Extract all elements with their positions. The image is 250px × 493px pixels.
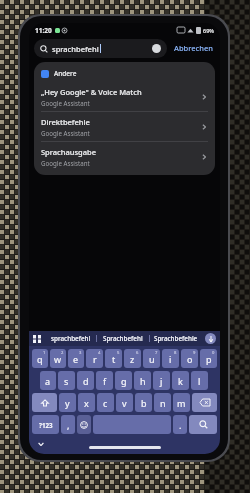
button[interactable]: Backspace — [192, 393, 217, 412]
staticText: q — [37, 353, 43, 365]
button[interactable]: Shift — [32, 393, 57, 412]
button[interactable]: s — [58, 371, 75, 390]
button[interactable]: Sprachausgabe — [34, 142, 215, 171]
staticText: 2 — [61, 350, 64, 356]
button[interactable]: Sprachbefehl — [97, 331, 149, 346]
button[interactable]: sprachbefehl — [45, 331, 96, 346]
button[interactable]: 7 — [143, 349, 160, 368]
button[interactable]: Direktbefehle — [34, 112, 215, 142]
button[interactable]: Emoji — [77, 415, 91, 434]
button[interactable]: g — [115, 371, 132, 390]
staticText: y — [65, 397, 70, 409]
staticText: b — [141, 397, 147, 409]
staticText: Google Assistant — [41, 99, 90, 107]
staticText: h — [140, 375, 146, 387]
staticText: 1 — [43, 350, 46, 356]
staticText: c — [103, 397, 108, 409]
staticText: a — [45, 375, 51, 387]
button[interactable]: y — [59, 393, 76, 412]
button[interactable]: 0 — [200, 349, 217, 368]
staticText: sprachbefehl — [51, 334, 91, 343]
staticText: , — [67, 419, 70, 431]
button[interactable]: Search — [189, 415, 217, 434]
button[interactable]: 3 — [68, 349, 84, 368]
staticText: Google Assistant — [41, 159, 90, 167]
staticText: j — [160, 375, 163, 387]
button[interactable]: 5 — [105, 349, 122, 368]
staticText: l — [198, 375, 201, 387]
button[interactable]: 1 — [32, 349, 48, 368]
staticText: 4 — [98, 350, 101, 356]
staticText: 5 — [117, 350, 120, 356]
staticText: f — [103, 375, 107, 387]
button[interactable]: h — [134, 371, 151, 390]
button[interactable]: f — [96, 371, 113, 390]
staticText: ?123 — [39, 421, 53, 429]
button[interactable]: 6 — [124, 349, 141, 368]
button[interactable]: v — [116, 393, 133, 412]
button[interactable]: Clear — [152, 44, 161, 53]
staticText: 69% — [203, 27, 214, 34]
staticText: Sprachbefehl — [103, 334, 143, 343]
staticText: 3 — [79, 350, 82, 356]
staticText: z — [130, 353, 135, 365]
staticText: 6 — [136, 350, 139, 356]
staticText: t — [112, 353, 116, 365]
button[interactable]: b — [135, 393, 152, 412]
staticText: 9 — [193, 350, 196, 356]
staticText: 0 — [212, 350, 215, 356]
staticText: 11:20 — [35, 26, 52, 35]
button[interactable]: 2 — [50, 349, 66, 368]
staticText: i — [169, 353, 172, 365]
button[interactable]: Search — [34, 39, 167, 58]
staticText: u — [149, 353, 155, 365]
button[interactable]: ?123 — [32, 415, 59, 434]
staticText: g — [121, 375, 127, 387]
staticText: Google Assistant — [41, 129, 90, 137]
staticText: m — [177, 397, 186, 409]
button[interactable]: „Hey Google" & Voice Match — [34, 82, 215, 112]
staticText: Andere — [54, 69, 77, 78]
staticText: p — [206, 353, 212, 365]
staticText: x — [84, 397, 89, 409]
button[interactable]: c — [97, 393, 114, 412]
button[interactable]: 9 — [181, 349, 198, 368]
button[interactable]: Sprachbefehle — [150, 331, 202, 346]
button[interactable]: Clipboard — [33, 335, 41, 343]
button[interactable]: j — [153, 371, 170, 390]
button[interactable]: x — [78, 393, 95, 412]
button[interactable]: a — [40, 371, 56, 390]
staticText: Sprachbefehle — [154, 334, 198, 343]
staticText: v — [122, 397, 127, 409]
staticText: Sprachausgabe — [41, 147, 97, 157]
staticText: d — [83, 375, 89, 387]
staticText: sprachbefehl — [52, 44, 99, 54]
button[interactable]: , — [61, 415, 75, 434]
staticText: . — [179, 419, 182, 431]
button[interactable]: k — [172, 371, 189, 390]
button[interactable]: 4 — [86, 349, 103, 368]
staticText: Abbrechen — [174, 43, 213, 53]
staticText: 7 — [155, 350, 158, 356]
button[interactable]: Abbrechen — [172, 40, 215, 56]
staticText: Direktbefehle — [41, 117, 90, 127]
staticText: w — [54, 353, 62, 365]
staticText: „Hey Google" & Voice Match — [41, 87, 142, 97]
button[interactable]: Space — [93, 415, 171, 434]
other: Search — [40, 45, 48, 53]
button[interactable]: n — [154, 393, 171, 412]
staticText: 8 — [174, 350, 177, 356]
staticText: o — [187, 353, 193, 365]
staticText: e — [73, 353, 79, 365]
staticText: k — [178, 375, 183, 387]
button[interactable]: m — [173, 393, 190, 412]
button[interactable]: More suggestions — [205, 333, 216, 344]
button[interactable]: l — [191, 371, 208, 390]
button[interactable]: . — [173, 415, 187, 434]
staticText: n — [160, 397, 166, 409]
button[interactable]: d — [77, 371, 94, 390]
button[interactable]: 8 — [162, 349, 179, 368]
other: Hide keyboard — [37, 440, 45, 448]
staticText: r — [93, 353, 97, 365]
staticText: s — [64, 375, 69, 387]
